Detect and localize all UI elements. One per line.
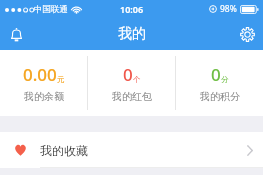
staticText: 10:06 <box>120 3 144 15</box>
staticText: 98% <box>220 3 237 15</box>
staticText: 我的积分 <box>200 90 240 103</box>
button[interactable]: 0.00 <box>0 50 87 116</box>
staticText: 元 <box>57 75 65 84</box>
staticText: 我的 <box>118 25 146 43</box>
staticText: 我的红包 <box>112 90 152 103</box>
staticText: 中国联通 <box>34 4 68 15</box>
button[interactable]: Settings <box>231 18 263 50</box>
button[interactable]: Notifications <box>0 18 32 50</box>
staticText: 个 <box>133 75 141 84</box>
staticText: 我的余额 <box>24 90 64 103</box>
staticText: 我的收藏 <box>40 143 88 158</box>
button[interactable]: 0 <box>88 50 175 116</box>
button[interactable]: 我的收藏 <box>0 132 263 168</box>
staticText: 分 <box>221 75 229 84</box>
button[interactable]: 0 <box>176 50 263 116</box>
staticText: 0 <box>211 63 221 86</box>
staticText: 0 <box>123 63 133 86</box>
staticText: 0.00 <box>23 63 57 86</box>
